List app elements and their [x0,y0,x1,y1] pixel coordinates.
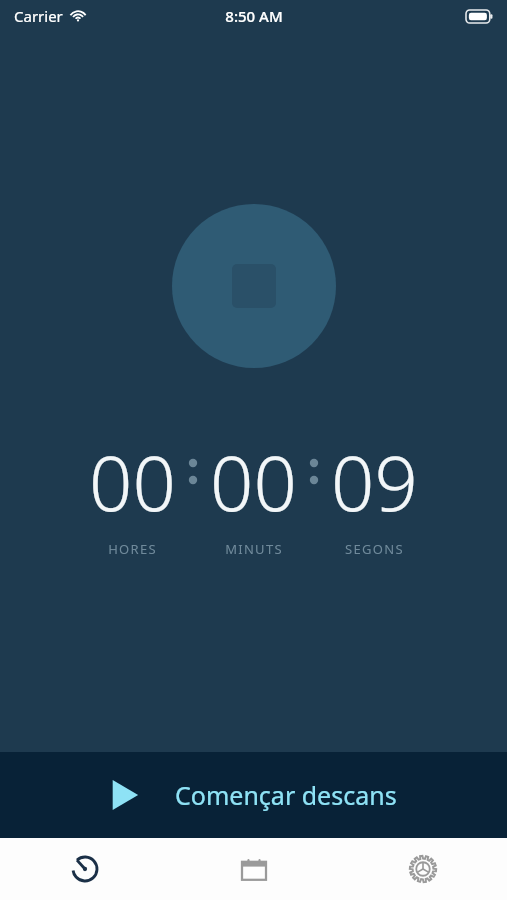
button[interactable]: Stop timer [172,204,336,368]
staticText: MINUTS [225,540,283,558]
staticText: HORES [108,540,157,558]
staticText: SEGONS [345,540,404,558]
staticText: 09 [331,430,418,534]
staticText: 8:50 AM [225,6,283,26]
button[interactable]: Calendar [169,838,338,900]
staticText: Carrier [14,6,63,26]
staticText: 00 [210,430,297,534]
staticText: 00 [89,430,176,534]
button[interactable]: Settings [338,838,507,900]
button[interactable]: Començar descans [0,752,507,838]
button[interactable]: Timer [0,838,169,900]
staticText: Començar descans [175,778,397,812]
